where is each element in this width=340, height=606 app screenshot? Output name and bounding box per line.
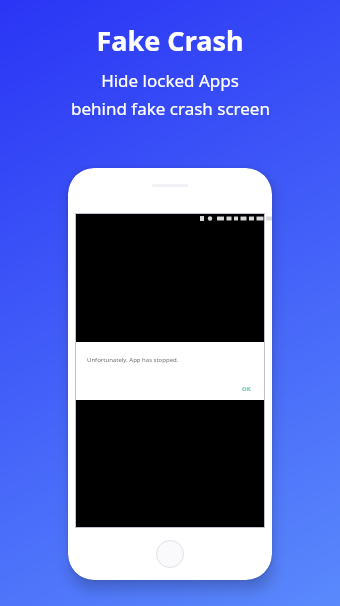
staticText: OK bbox=[242, 385, 251, 393]
staticText: Fake Crash bbox=[96, 22, 244, 59]
button[interactable]: Unfortunately, App has stopped. bbox=[68, 168, 272, 580]
button[interactable]: Home bbox=[156, 540, 184, 568]
staticText: Unfortunately, App has stopped. bbox=[87, 356, 179, 364]
button[interactable]: Unfortunately, App has stopped. bbox=[75, 342, 265, 400]
staticText: behind fake crash screen bbox=[71, 97, 270, 120]
button[interactable]: OK bbox=[240, 384, 253, 394]
staticText: Hide locked Apps bbox=[101, 69, 239, 92]
